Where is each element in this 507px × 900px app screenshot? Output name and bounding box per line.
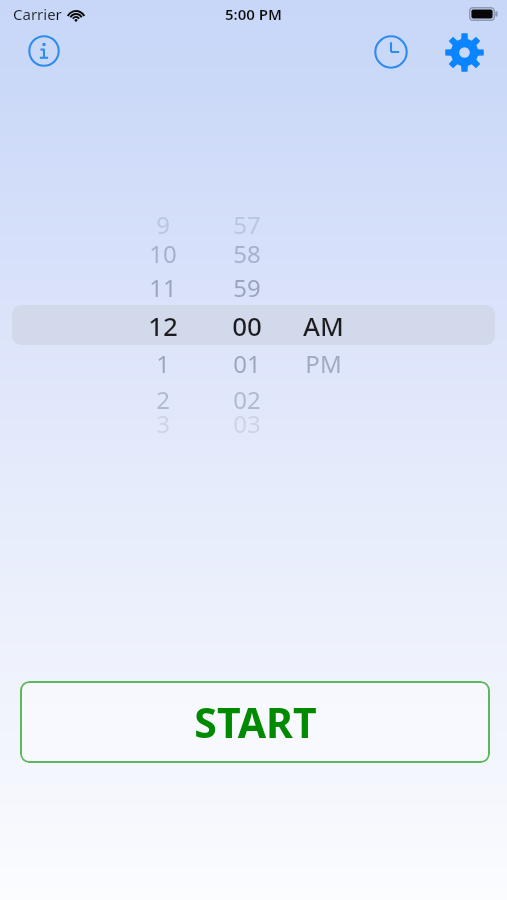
button[interactable]: 10 xyxy=(113,234,213,272)
button[interactable]: Selected time 12:00 AM xyxy=(12,305,495,345)
button[interactable]: 59 xyxy=(197,268,297,306)
button[interactable]: 1 xyxy=(113,344,213,382)
staticText: PM xyxy=(305,347,342,380)
button[interactable]: 2 xyxy=(113,380,213,418)
button[interactable]: Info xyxy=(21,28,67,74)
staticText: 00 xyxy=(232,308,262,343)
button[interactable]: 02 xyxy=(197,380,297,418)
button[interactable]: History xyxy=(368,29,414,75)
button[interactable]: 3 xyxy=(113,404,213,442)
button[interactable]: 12 xyxy=(113,306,213,344)
button[interactable]: PM xyxy=(273,344,373,382)
staticText: START xyxy=(194,694,317,750)
staticText: Carrier xyxy=(13,4,62,24)
staticText: 58 xyxy=(233,237,261,270)
staticText: 01 xyxy=(233,347,261,380)
button[interactable]: 9 xyxy=(113,205,213,243)
staticText: 03 xyxy=(233,407,261,440)
staticText: 57 xyxy=(233,208,261,241)
staticText: 5:00 PM xyxy=(225,4,282,24)
button[interactable]: AM xyxy=(273,306,373,344)
button[interactable]: 57 xyxy=(197,205,297,243)
staticText: 12 xyxy=(148,308,178,343)
button[interactable]: 58 xyxy=(197,234,297,272)
button[interactable]: 11 xyxy=(113,268,213,306)
staticText: AM xyxy=(303,308,344,343)
staticText: 02 xyxy=(233,383,261,416)
staticText: 59 xyxy=(233,271,261,304)
button[interactable]: START xyxy=(20,681,490,763)
staticText: 11 xyxy=(149,271,177,304)
staticText: 9 xyxy=(156,208,170,241)
staticText: 1 xyxy=(156,347,170,380)
button[interactable]: 00 xyxy=(197,306,297,344)
staticText: 10 xyxy=(149,237,177,270)
button[interactable]: 03 xyxy=(197,404,297,442)
staticText: 2 xyxy=(156,383,170,416)
staticText: 3 xyxy=(156,407,170,440)
button[interactable]: Settings xyxy=(441,29,487,75)
button[interactable]: 01 xyxy=(197,344,297,382)
